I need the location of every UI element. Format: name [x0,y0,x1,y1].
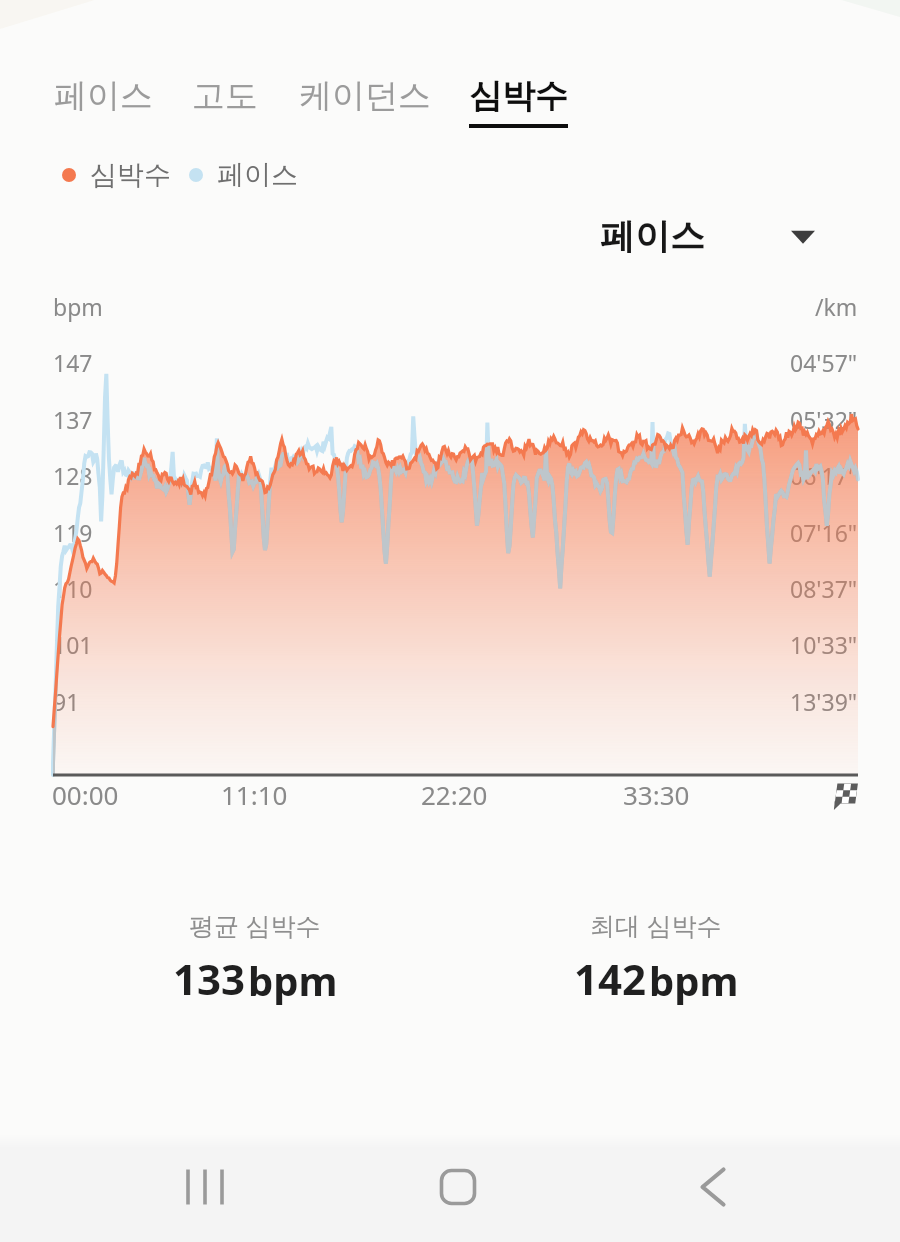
staticText: bpm [248,953,338,1007]
staticText: 11:10 [221,777,288,812]
button[interactable]: Finish [832,783,859,810]
staticText: 10'33" [790,629,858,660]
button[interactable]: 페이스 [54,75,153,117]
staticText: 페이스 [54,75,153,117]
staticText: bpm [649,953,739,1007]
staticText: 119 [53,517,93,548]
staticText: 147 [53,347,93,378]
staticText: 04'57" [790,347,858,378]
staticText: /km [815,291,858,322]
staticText: 심박수 [90,158,171,192]
staticText: 13'39" [790,686,858,717]
staticText: 최대 심박수 [590,908,722,942]
staticText: 128 [53,460,93,491]
staticText: 페이스 [217,158,298,192]
button[interactable]: Home [408,1160,508,1214]
staticText: 101 [53,629,93,660]
staticText: 133 [173,950,246,1007]
staticText: 페이스 [600,214,705,258]
staticText: 평균 심박수 [189,908,321,942]
staticText: 33:30 [623,777,690,812]
staticText: 심박수 [469,75,568,117]
staticText: 91 [53,686,80,717]
button[interactable]: 심박수 [469,75,568,128]
staticText: 22:20 [421,777,488,812]
button[interactable]: 고도 [192,75,258,117]
staticText: 137 [53,404,93,435]
staticText: 00:00 [52,777,119,812]
staticText: 07'16" [790,517,858,548]
staticText: 142 [574,950,647,1007]
staticText: 110 [53,573,93,604]
button[interactable]: 케이던스 [299,75,431,117]
button[interactable]: Back [663,1160,763,1214]
staticText: 06'17" [790,460,858,491]
button[interactable]: Recent apps [155,1160,255,1214]
staticText: 고도 [192,75,258,117]
staticText: 08'37" [790,573,858,604]
staticText: 05'32" [790,404,858,435]
button[interactable]: 페이스 [600,214,900,258]
staticText: 케이던스 [299,75,431,117]
staticText: bpm [53,291,103,322]
